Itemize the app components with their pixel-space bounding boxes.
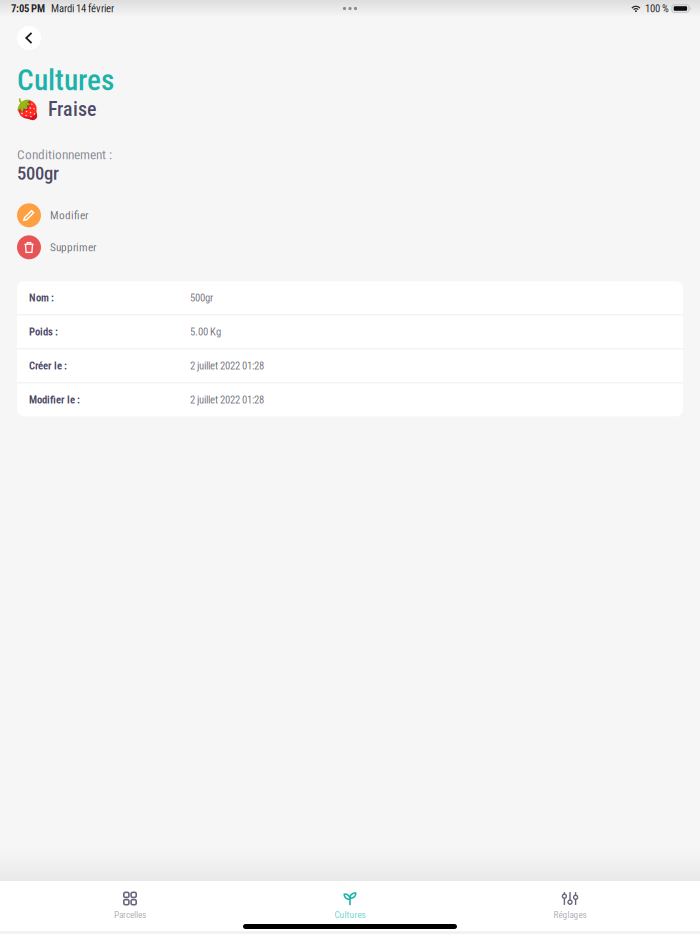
staticText: Supprimer	[50, 241, 96, 254]
button[interactable]: Modifier	[17, 203, 358, 227]
staticText: Cultures	[17, 63, 114, 97]
button[interactable]: Supprimer	[17, 235, 358, 259]
staticText: 500gr	[190, 292, 213, 304]
staticText: 500gr	[17, 162, 59, 184]
button[interactable]: Cultures	[295, 888, 405, 924]
staticText: Réglages	[553, 909, 586, 920]
staticText: 7:05 PM	[11, 2, 45, 15]
staticText: Cultures	[334, 909, 365, 920]
staticText: Modifier le :	[29, 394, 80, 406]
staticText: 5.00 Kg	[190, 326, 221, 338]
staticText: 2 juillet 2022 01:28	[190, 394, 264, 406]
button[interactable]: Réglages	[515, 888, 625, 924]
button[interactable]: Parcelles	[75, 888, 185, 924]
staticText: Conditionnement :	[17, 147, 112, 162]
staticText: Mardi 14 février	[51, 2, 114, 15]
staticText: Fraise	[48, 97, 96, 121]
button[interactable]: Back	[17, 26, 41, 50]
staticText: Modifier	[50, 209, 88, 222]
staticText: 2 juillet 2022 01:28	[190, 360, 264, 372]
staticText: Nom :	[29, 292, 54, 304]
staticText: 🍓	[15, 97, 40, 121]
staticText: 100 %	[645, 2, 669, 15]
staticText: Créer le :	[29, 360, 67, 372]
staticText: Parcelles	[114, 909, 146, 920]
staticText: Poids :	[29, 326, 58, 338]
